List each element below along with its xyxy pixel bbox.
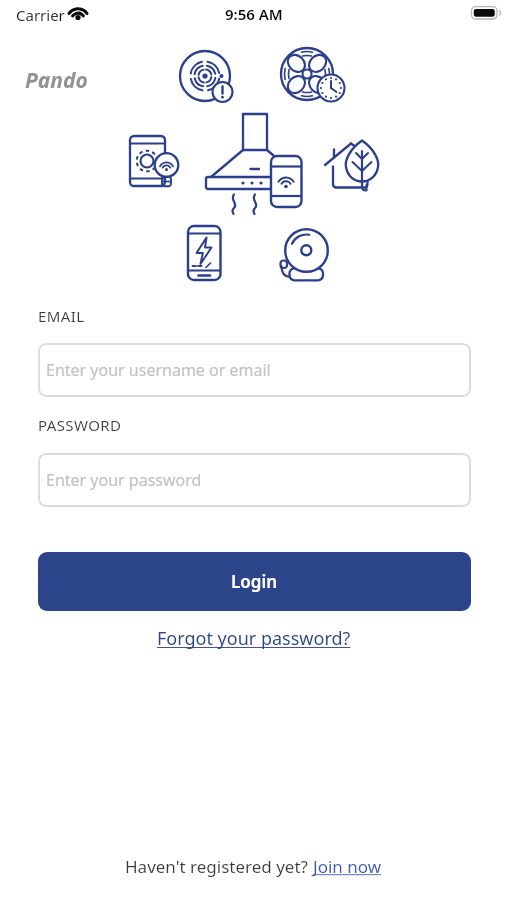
staticText: PASSWORD bbox=[38, 415, 122, 435]
staticText: Carrier bbox=[16, 5, 65, 25]
button[interactable]: Enter your password bbox=[38, 453, 471, 507]
staticText: Enter your password bbox=[46, 469, 202, 491]
staticText: Enter your username or email bbox=[46, 359, 271, 381]
staticText: Login bbox=[231, 570, 278, 593]
button[interactable]: Forgot your password? bbox=[157, 626, 351, 651]
staticText: EMAIL bbox=[38, 306, 85, 326]
staticText: Haven't registered yet? bbox=[125, 855, 313, 878]
staticText: Join now bbox=[313, 855, 382, 878]
staticText: 9:56 AM bbox=[225, 4, 283, 24]
staticText: Pando bbox=[25, 66, 88, 95]
button[interactable]: Join now bbox=[313, 855, 382, 878]
button[interactable]: Enter your username or email bbox=[38, 343, 471, 397]
staticText: Forgot your password? bbox=[157, 626, 351, 651]
button[interactable]: Login bbox=[38, 552, 471, 611]
